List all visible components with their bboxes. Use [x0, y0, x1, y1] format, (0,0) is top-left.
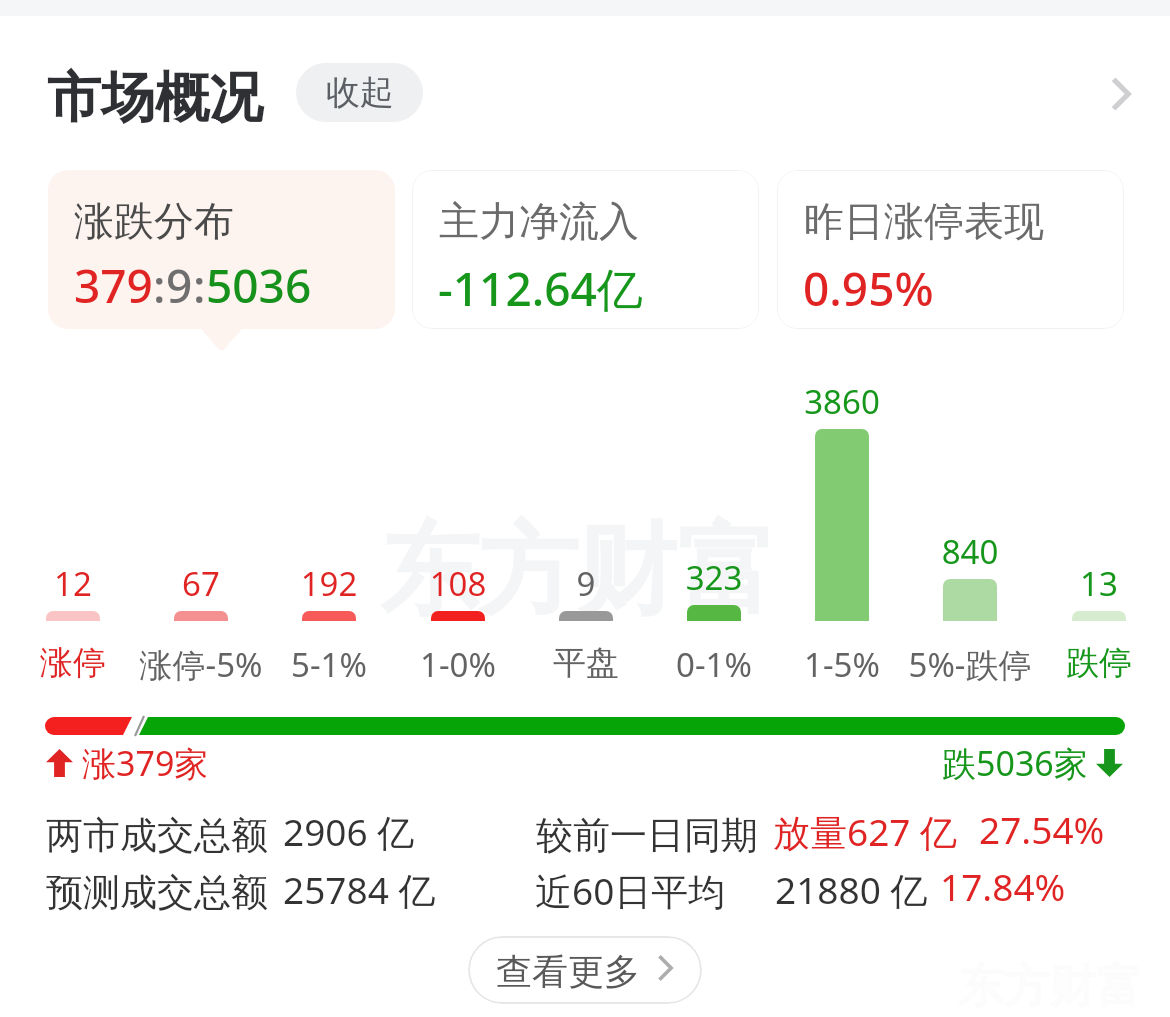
staticText: 市场概况 — [47, 64, 263, 132]
staticText: 近60日平均 — [535, 865, 726, 916]
staticText: 5%-跌停 — [900, 642, 1040, 687]
staticText: 13 — [1029, 561, 1169, 606]
staticText: 379 — [74, 254, 153, 317]
staticText: 27.54% — [979, 804, 1105, 854]
staticText: 5-1% — [259, 642, 399, 687]
staticText: 108 — [388, 561, 528, 606]
staticText: 昨日涨停表现 — [804, 196, 1044, 246]
staticText: 12 — [3, 561, 143, 606]
staticText: 较前一日同期 — [536, 812, 758, 859]
staticText: 两市成交总额 — [46, 812, 268, 859]
staticText: 192 — [259, 561, 399, 606]
staticText: 查看更多 — [496, 949, 640, 994]
staticText: 0.95% — [803, 257, 934, 320]
staticText: 涨停-5% — [131, 642, 271, 687]
staticText: 1-0% — [388, 642, 528, 687]
staticText: 放量627 亿 — [773, 806, 958, 857]
staticText: 跌停 — [1029, 642, 1169, 684]
button[interactable]: Expand market overview — [1088, 62, 1152, 126]
staticText: 涨停 — [3, 642, 143, 684]
staticText: 3860 — [772, 379, 912, 424]
staticText: 东方财富 — [380, 509, 776, 634]
staticText: 25784 亿 — [283, 864, 436, 915]
staticText: -112.64亿 — [438, 257, 643, 320]
staticText: 主力净流入 — [439, 196, 639, 246]
staticText: 67 — [131, 561, 271, 606]
staticText: 21880 亿 — [775, 864, 928, 915]
staticText: : — [153, 254, 166, 317]
staticText: 1-5% — [772, 642, 912, 687]
staticText: 0-1% — [644, 642, 784, 687]
staticText: 平盘 — [516, 642, 656, 684]
staticText: 收起 — [326, 71, 394, 114]
button[interactable] — [468, 936, 702, 1004]
staticText: 17.84% — [940, 861, 1066, 911]
button[interactable] — [412, 170, 759, 329]
staticText: 9 — [516, 561, 656, 606]
staticText: 323 — [644, 555, 784, 600]
button[interactable] — [48, 170, 395, 329]
staticText: 跌5036家 — [942, 740, 1088, 786]
button[interactable]: 收起 — [296, 63, 423, 122]
button[interactable] — [777, 170, 1124, 329]
staticText: 2906 亿 — [283, 806, 415, 857]
staticText: 预测成交总额 — [46, 869, 268, 916]
staticText: : — [193, 254, 206, 317]
staticText: 涨跌分布 — [74, 196, 234, 246]
staticText: 840 — [900, 529, 1040, 574]
staticText: 5036 — [206, 254, 312, 317]
staticText: 9 — [166, 254, 193, 317]
staticText: 涨379家 — [82, 740, 209, 786]
